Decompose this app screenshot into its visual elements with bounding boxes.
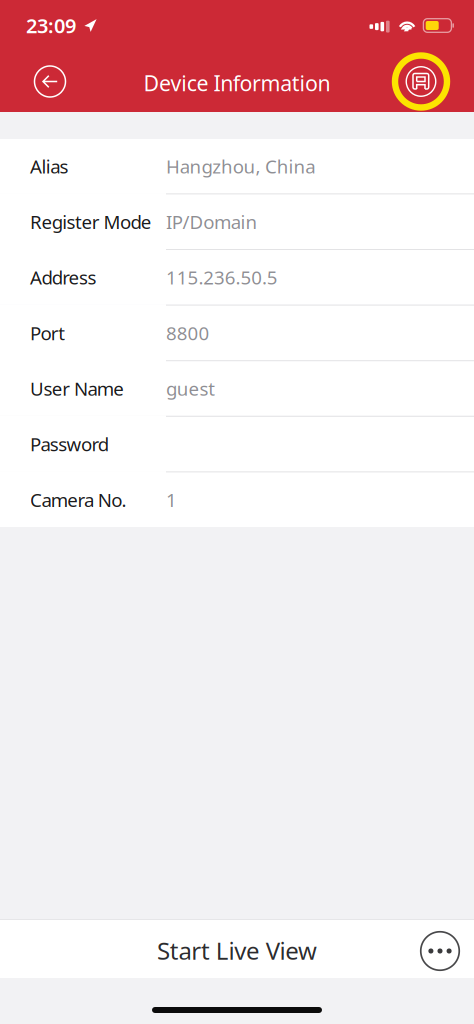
staticText: 8800 <box>166 320 209 345</box>
staticText: guest <box>166 376 215 401</box>
staticText: Device Information <box>143 69 331 97</box>
staticText: Port <box>30 320 65 345</box>
staticText: 23:09 <box>26 12 76 39</box>
staticText: Hangzhou, China <box>166 154 315 179</box>
button[interactable]: Start Live View <box>0 920 474 978</box>
staticText: Password <box>30 432 109 456</box>
button[interactable]: Back <box>26 53 74 109</box>
staticText: 1 <box>166 487 177 512</box>
staticText: Camera No. <box>30 487 127 512</box>
staticText: User Name <box>30 376 124 401</box>
button[interactable]: More options <box>414 920 466 978</box>
staticText: Address <box>30 265 96 290</box>
staticText: IP/Domain <box>166 209 257 234</box>
staticText: Start Live View <box>157 935 317 966</box>
staticText: 115.236.50.5 <box>166 265 278 290</box>
staticText: Register Mode <box>30 209 152 234</box>
staticText: Alias <box>30 154 69 179</box>
button[interactable]: Save <box>392 52 450 110</box>
